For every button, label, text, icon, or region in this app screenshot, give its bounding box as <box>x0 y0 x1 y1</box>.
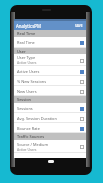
button[interactable]: Toggle metric <box>79 126 84 131</box>
button[interactable]: Toggle metric <box>79 89 84 94</box>
button[interactable]: Toggle metric <box>79 106 84 111</box>
staticText: Traffic Sources <box>17 134 45 139</box>
staticText: Real Time <box>17 31 36 36</box>
staticText: Avg. Session Duration <box>17 116 57 121</box>
staticText: Bounce Rate <box>17 126 40 131</box>
button[interactable]: Source / Medium <box>14 140 86 153</box>
staticText: % New Sessions <box>17 79 47 84</box>
staticText: User Type <box>17 55 36 60</box>
button[interactable]: Toggle metric <box>79 116 84 121</box>
staticText: AnalyticsPM <box>16 23 74 29</box>
button[interactable]: Toggle metric <box>79 40 84 45</box>
button[interactable]: Toggle metric <box>79 79 84 84</box>
staticText: User <box>17 49 26 54</box>
button[interactable]: Active Users <box>14 66 86 76</box>
button[interactable]: Real Time <box>14 37 86 48</box>
staticText: Real Time <box>17 40 35 45</box>
button[interactable]: Sessions <box>14 103 86 113</box>
button[interactable]: New Users <box>14 86 86 96</box>
button[interactable]: Toggle metric <box>79 69 84 74</box>
button[interactable]: Bounce Rate <box>14 123 86 133</box>
staticText: New Users <box>17 89 37 94</box>
staticText: Sessions <box>17 106 33 111</box>
staticText: Active Users <box>17 60 37 65</box>
button[interactable]: Toggle metric <box>79 58 84 63</box>
staticText: Active Users <box>17 147 37 152</box>
staticText: SAVE <box>75 24 83 28</box>
button[interactable]: % New Sessions <box>14 76 86 86</box>
button[interactable]: SAVE <box>74 23 84 29</box>
staticText: Source / Medium <box>17 142 49 147</box>
button[interactable]: Toggle metric <box>79 144 84 149</box>
button[interactable]: Avg. Session Duration <box>14 113 86 123</box>
staticText: Active Users <box>17 69 40 74</box>
button[interactable]: User Type <box>14 54 86 66</box>
staticText: Session <box>17 97 32 102</box>
